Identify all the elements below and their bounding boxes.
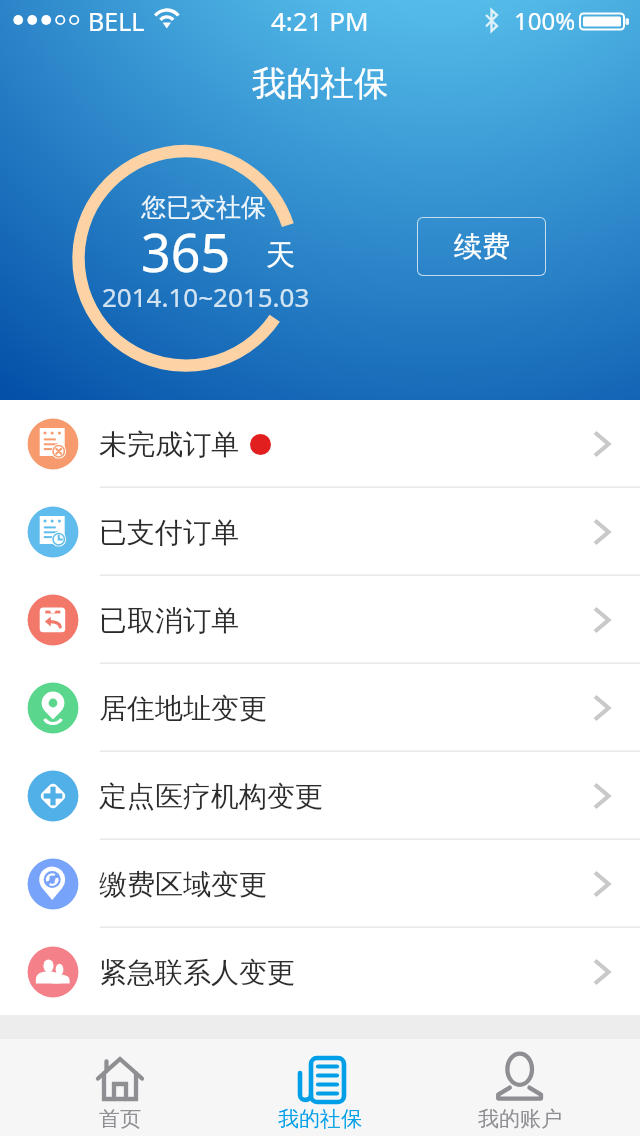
staticText: 已取消订单 — [99, 603, 239, 638]
button[interactable]: 未完成订单 — [0, 400, 640, 488]
staticText: 未完成订单 — [99, 427, 239, 462]
staticText: 居住地址变更 — [99, 691, 267, 726]
button[interactable]: 已取消订单 — [0, 576, 640, 664]
button[interactable]: 居住地址变更 — [0, 664, 640, 752]
button[interactable]: 缴费区域变更 — [0, 840, 640, 928]
staticText: 我的账户 — [478, 1106, 562, 1132]
staticText: BELL — [88, 4, 145, 38]
button[interactable]: Home — [50, 1039, 190, 1136]
staticText: 定点医疗机构变更 — [99, 779, 323, 814]
staticText: 首页 — [99, 1106, 141, 1132]
staticText: 您已交社保 — [141, 192, 266, 223]
button[interactable]: 已支付订单 — [0, 488, 640, 576]
staticText: 续费 — [454, 229, 510, 264]
staticText: 4:21 PM — [271, 3, 369, 38]
staticText: 我的社保 — [278, 1106, 362, 1132]
button[interactable]: My account — [450, 1039, 590, 1136]
staticText: 天 — [266, 237, 295, 274]
staticText: 缴费区域变更 — [99, 867, 267, 902]
staticText: 我的社保 — [252, 62, 388, 105]
staticText: 365 — [141, 216, 231, 287]
button[interactable]: 定点医疗机构变更 — [0, 752, 640, 840]
staticText: 2014.10~2015.03 — [102, 279, 310, 314]
staticText: 100% — [514, 4, 576, 37]
staticText: 已支付订单 — [99, 515, 239, 550]
button[interactable]: My social security — [250, 1039, 390, 1136]
button[interactable]: 续费 — [417, 217, 546, 276]
staticText: 紧急联系人变更 — [99, 955, 295, 990]
button[interactable]: 紧急联系人变更 — [0, 928, 640, 1016]
